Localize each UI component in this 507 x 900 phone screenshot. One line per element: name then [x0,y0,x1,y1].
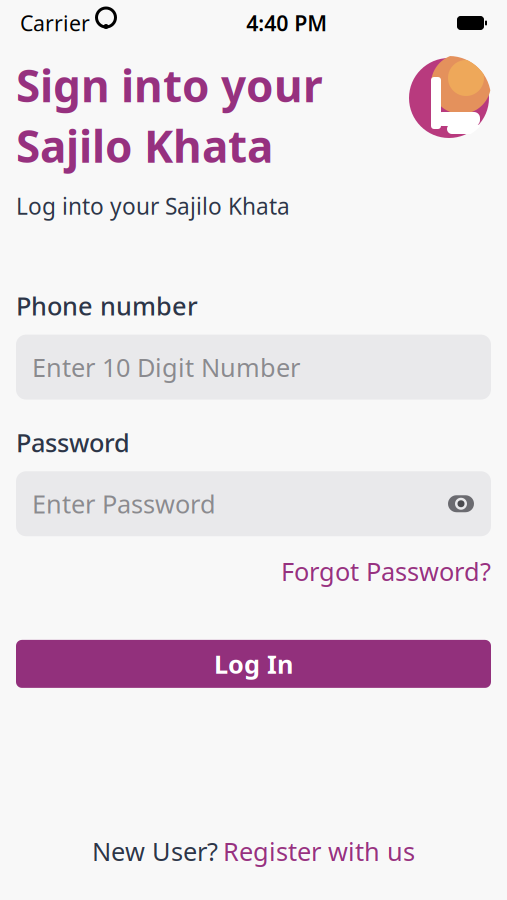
staticText: 4:40 PM [246,9,327,37]
button[interactable]: Enter Password [16,471,491,536]
staticText: Sign into your [16,56,323,114]
button[interactable]: New User? [92,834,415,868]
staticText: Phone number [16,289,198,323]
button[interactable]: Enter 10 Digit Number [16,335,491,400]
staticText: Log In [214,647,293,681]
staticText: Password [16,426,130,459]
staticText: Enter 10 Digit Number [32,350,300,384]
button[interactable]: Log In [16,640,491,688]
staticText: New User? [92,834,218,868]
staticText: Carrier [20,9,90,37]
staticText: Enter Password [32,487,216,520]
staticText: Forgot Password? [281,554,491,588]
staticText: Log into your Sajilo Khata [16,191,290,221]
button[interactable]: Forgot Password? [281,554,491,588]
staticText: Sajilo Khata [16,116,273,175]
staticText: Register with us [223,834,415,868]
